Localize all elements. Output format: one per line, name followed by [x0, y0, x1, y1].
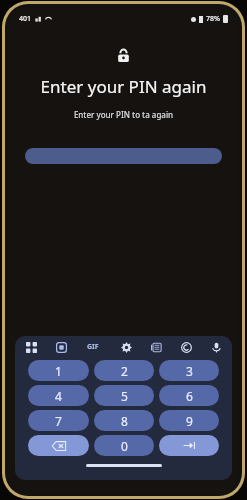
button[interactable]: 9	[159, 410, 219, 431]
button[interactable]: Stickers	[53, 339, 69, 355]
button[interactable]: Translate	[178, 339, 194, 355]
staticText: 401	[19, 14, 32, 24]
button[interactable]: 2	[94, 360, 154, 381]
staticText: 9	[186, 413, 193, 429]
staticText: 78%	[206, 14, 220, 24]
button[interactable]: GIF	[83, 339, 103, 355]
button[interactable]: 7	[28, 410, 89, 431]
button[interactable]: 4	[28, 385, 89, 406]
staticText: 4	[55, 388, 62, 404]
staticText: 1	[55, 363, 62, 379]
staticText: Enter your PIN to ta again	[9, 109, 238, 120]
button[interactable]: 1	[28, 360, 89, 381]
button[interactable]: Apps	[23, 339, 39, 355]
button[interactable]: Next field	[159, 435, 219, 456]
button[interactable]: Settings	[118, 339, 134, 355]
button[interactable]: 0	[94, 435, 154, 456]
staticText: 7	[55, 413, 62, 429]
staticText: 5	[121, 388, 128, 404]
button[interactable]	[25, 148, 222, 164]
button[interactable]: Backspace	[28, 435, 89, 456]
button[interactable]: 8	[94, 410, 154, 431]
button[interactable]: Clipboard	[148, 339, 164, 355]
staticText: 3	[186, 363, 193, 379]
staticText: 2	[121, 363, 128, 379]
staticText: 8	[121, 413, 128, 429]
staticText: 6	[186, 388, 193, 404]
button[interactable]: 3	[159, 360, 219, 381]
staticText: 0	[121, 438, 128, 454]
button[interactable]: 5	[94, 385, 154, 406]
staticText: GIF	[87, 342, 99, 352]
button[interactable]: Voice input	[208, 339, 224, 355]
button[interactable]: 6	[159, 385, 219, 406]
staticText: Enter your PIN again	[9, 75, 238, 98]
